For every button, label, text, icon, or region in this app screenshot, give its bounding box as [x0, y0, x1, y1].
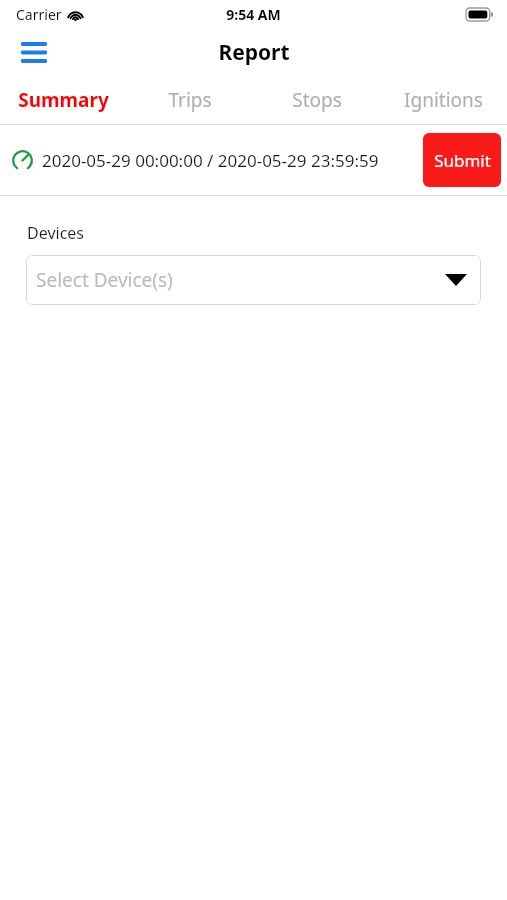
staticText: 9:54 AM — [226, 5, 281, 24]
staticText: Submit — [434, 149, 491, 172]
staticText: Select Device(s) — [36, 267, 173, 293]
staticText: 2020-05-29 00:00:00 / 2020-05-29 23:59:5… — [42, 149, 379, 172]
button[interactable]: Summary — [0, 76, 126, 124]
staticText: Trips — [168, 87, 212, 113]
staticText: Stops — [292, 87, 342, 113]
staticText: Summary — [18, 87, 109, 113]
button[interactable]: Ignitions — [380, 76, 507, 124]
button[interactable]: Menu — [16, 37, 52, 67]
staticText: Ignitions — [404, 87, 483, 113]
staticText: Devices — [27, 222, 85, 244]
button[interactable]: Stops — [253, 76, 380, 124]
button[interactable]: Submit — [423, 133, 501, 187]
button[interactable]: Trips — [126, 76, 253, 124]
staticText: Report — [218, 38, 290, 67]
staticText: Carrier — [16, 5, 62, 24]
button[interactable]: Select Device(s) — [26, 255, 481, 305]
button[interactable]: 2020-05-29 00:00:00 / 2020-05-29 23:59:5… — [12, 149, 379, 172]
